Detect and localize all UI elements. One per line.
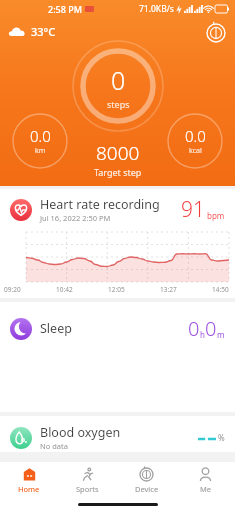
button[interactable]: 0 (72, 40, 164, 132)
staticText: Sleep (40, 320, 188, 337)
staticText: 0.0 (30, 126, 51, 146)
staticText: z (22, 322, 25, 330)
staticText: O₂ (21, 437, 27, 444)
staticText: 71.0KB/s (139, 3, 174, 15)
button[interactable]: Home (0, 462, 58, 498)
staticText: bpm (207, 210, 225, 221)
staticText: 10:42 (56, 285, 73, 294)
staticText: 13:27 (160, 285, 177, 294)
staticText: 0 (188, 315, 200, 342)
button[interactable]: Device (117, 462, 176, 498)
button[interactable]: 0.0 (12, 113, 68, 169)
staticText: Device (135, 484, 159, 494)
button[interactable]: O₂ (0, 416, 235, 452)
staticText: 91 (181, 195, 205, 224)
staticText: 14:50 (212, 285, 229, 294)
staticText: 12:05 (108, 285, 125, 294)
staticText: 09:20 (4, 285, 21, 294)
staticText: 0.0 (185, 126, 206, 146)
button[interactable]: 0.0 (167, 113, 223, 169)
staticText: Heart rate recording (40, 196, 160, 213)
staticText: Sports (76, 484, 99, 494)
button[interactable]: 33°C (8, 24, 56, 39)
staticText: km (35, 146, 46, 156)
button[interactable]: 8000 (94, 140, 142, 178)
button[interactable]: Sports (58, 462, 117, 498)
button[interactable]: z (0, 302, 235, 412)
staticText: 8000 (96, 140, 140, 166)
staticText: h (200, 329, 205, 340)
staticText: 0 (205, 315, 217, 342)
staticText: Me (200, 484, 212, 494)
staticText: Blood oxygen (40, 424, 121, 441)
staticText: steps (107, 98, 130, 110)
button[interactable]: Me (176, 462, 235, 498)
staticText: m (217, 329, 225, 340)
staticText: 33°C (31, 24, 56, 39)
staticText: Home (18, 484, 40, 494)
staticText: kcal (189, 146, 202, 156)
button[interactable]: Device (205, 22, 227, 44)
button[interactable]: Heart rate recording (0, 189, 235, 298)
staticText: % (218, 432, 225, 443)
staticText: 0 (111, 63, 126, 97)
staticText: Target step (94, 166, 142, 178)
staticText: Jul 16, 2022 2:50 PM (40, 213, 111, 223)
staticText: 2:58 PM (48, 3, 82, 15)
staticText: No data (40, 441, 68, 451)
